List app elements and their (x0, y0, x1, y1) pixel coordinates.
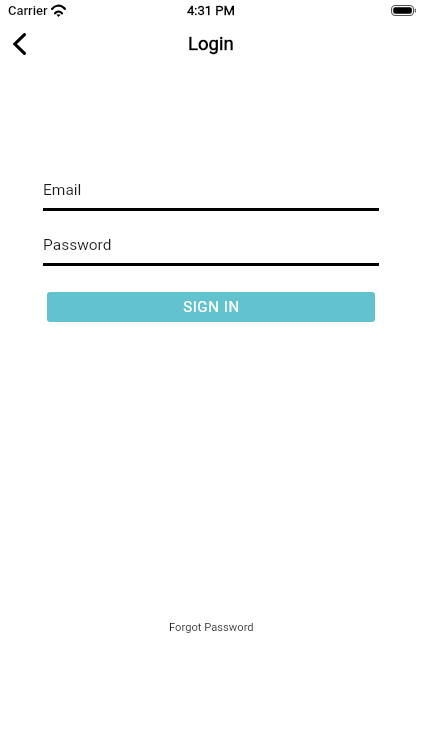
staticText: Email (43, 181, 82, 199)
button[interactable]: Email (43, 181, 379, 211)
staticText: Login (188, 33, 234, 55)
staticText: 4:31 PM (187, 3, 235, 18)
staticText: Carrier (8, 3, 48, 18)
button[interactable]: Forgot Password (169, 621, 254, 634)
button[interactable]: Back (0, 24, 40, 64)
staticText: Forgot Password (169, 621, 254, 634)
staticText: SIGN IN (183, 298, 240, 316)
button[interactable]: Password (43, 236, 379, 266)
button[interactable]: SIGN IN (47, 292, 375, 322)
staticText: Password (43, 236, 112, 254)
